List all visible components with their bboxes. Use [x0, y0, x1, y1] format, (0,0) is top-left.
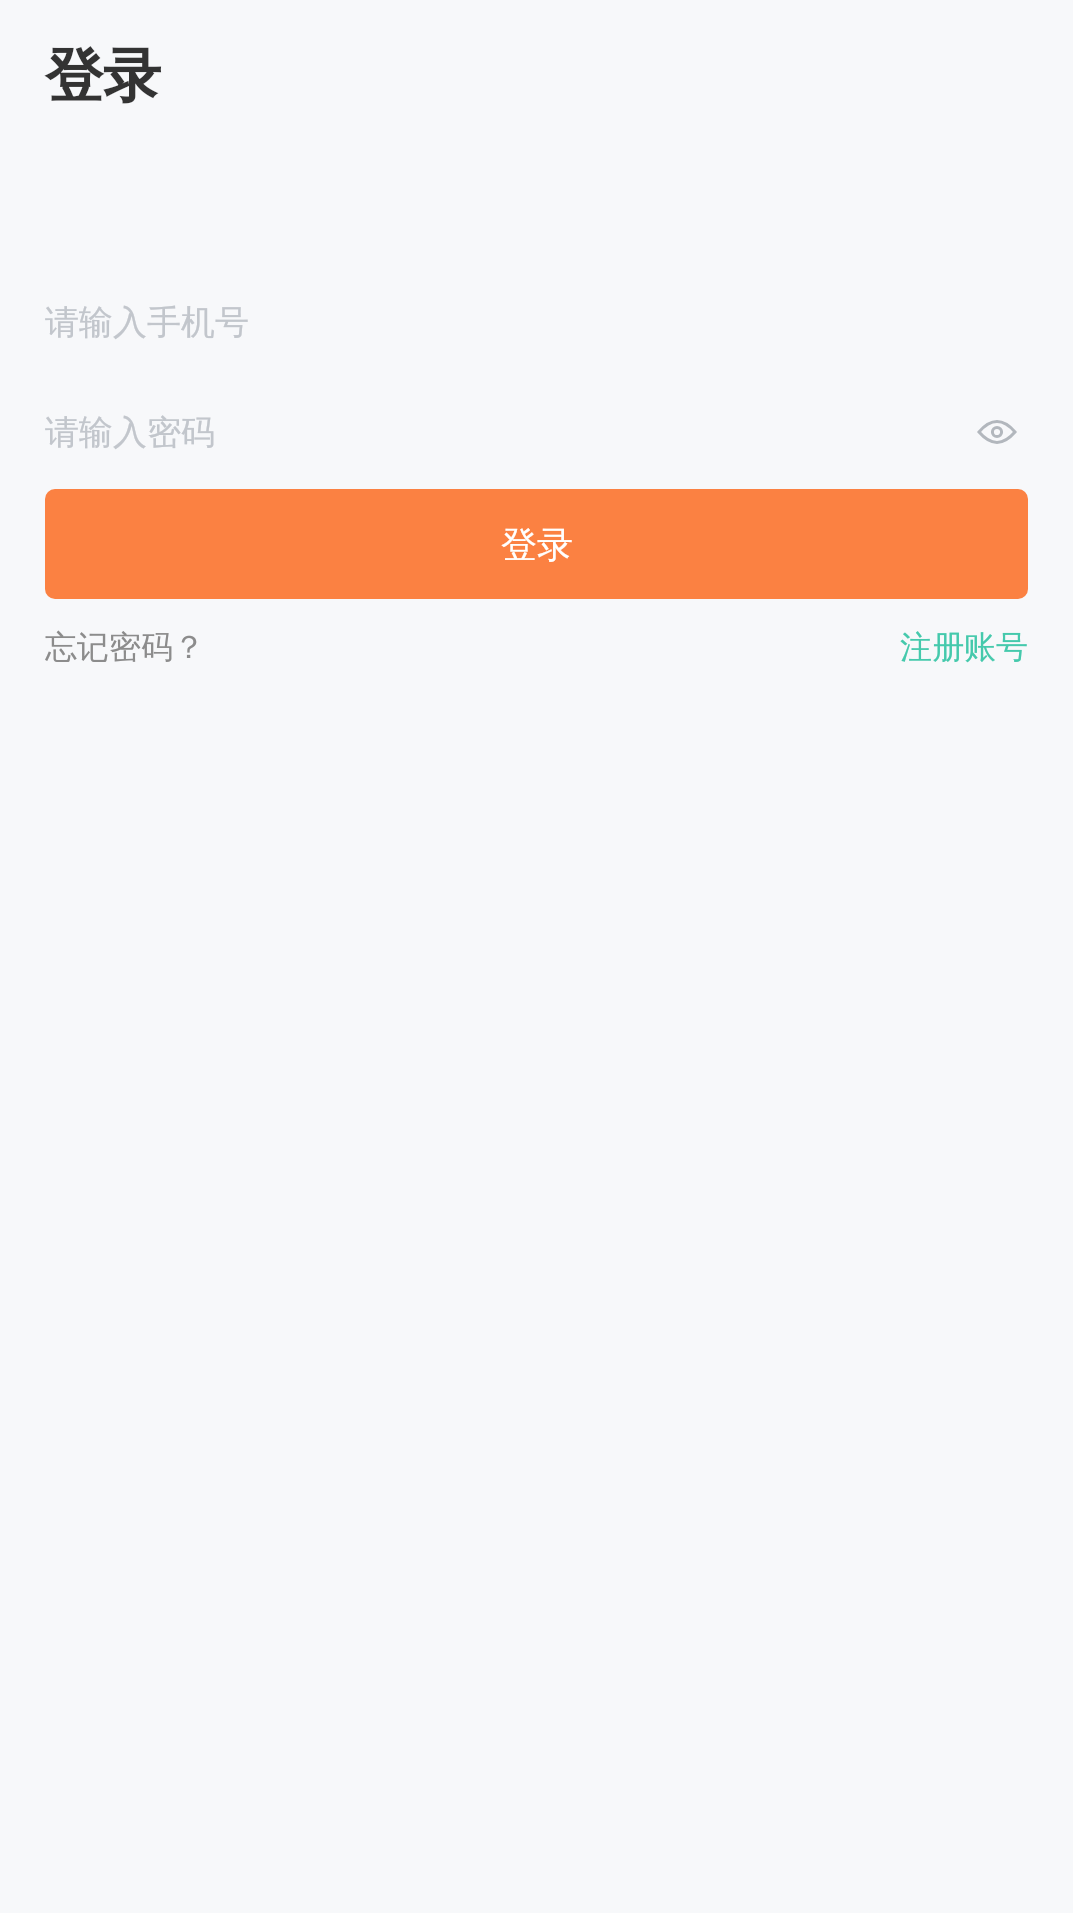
staticText: 请输入手机号: [45, 301, 249, 344]
staticText: 请输入密码: [45, 411, 215, 454]
button[interactable]: 忘记密码？: [45, 611, 205, 683]
staticText: 注册账号: [900, 627, 1028, 667]
staticText: 忘记密码？: [45, 627, 205, 667]
button[interactable]: 登录: [45, 489, 1028, 599]
button[interactable]: 请输入密码: [45, 401, 966, 463]
staticText: 登录: [501, 522, 573, 567]
button[interactable]: Show password: [966, 401, 1028, 463]
staticText: 登录: [45, 40, 161, 113]
button[interactable]: 请输入手机号: [45, 291, 1028, 353]
button[interactable]: 注册账号: [900, 611, 1028, 683]
